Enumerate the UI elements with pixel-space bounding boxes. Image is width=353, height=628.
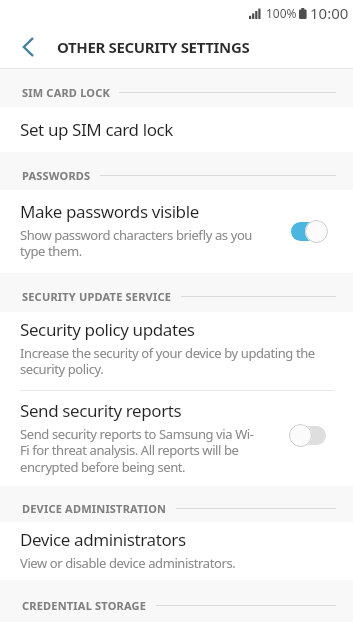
- staticText: SECURITY UPDATE SERVICE: [22, 289, 172, 304]
- button[interactable]: Set up SIM card lock: [0, 107, 353, 152]
- staticText: PASSWORDS: [22, 168, 91, 183]
- staticText: View or disable device administrators.: [20, 554, 236, 572]
- staticText: Send security reports: [20, 399, 182, 422]
- staticText: Make passwords visible: [20, 200, 199, 223]
- staticText: Increase the security of your device by …: [20, 344, 315, 378]
- staticText: Security policy updates: [20, 318, 195, 341]
- button[interactable]: Make passwords visible: [0, 190, 353, 273]
- staticText: SIM CARD LOCK: [22, 85, 110, 100]
- staticText: CREDENTIAL STORAGE: [22, 598, 147, 613]
- button[interactable]: [10, 29, 46, 65]
- staticText: Show password characters briefly as you …: [20, 226, 253, 260]
- staticText: Device administrators: [20, 528, 186, 551]
- staticText: DEVICE ADMINISTRATION: [22, 501, 167, 516]
- staticText: 100%: [266, 5, 297, 21]
- staticText: Set up SIM card lock: [20, 118, 173, 141]
- button[interactable]: Security policy updates: [0, 312, 353, 391]
- staticText: 10:00: [310, 3, 349, 23]
- staticText: Send security reports to Samsung via Wi-…: [20, 425, 254, 476]
- button[interactable]: Send security reports: [0, 391, 353, 486]
- button[interactable]: Device administrators: [0, 522, 353, 580]
- staticText: OTHER SECURITY SETTINGS: [57, 37, 250, 57]
